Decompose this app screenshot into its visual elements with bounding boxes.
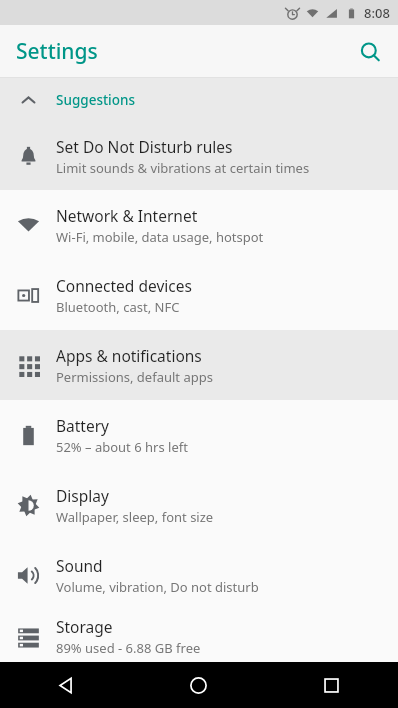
staticText: Apps & notifications <box>56 345 202 366</box>
staticText: 52% – about 6 hrs left <box>56 438 188 456</box>
button[interactable]: Back <box>0 662 132 708</box>
button[interactable]: Recent apps <box>265 662 398 708</box>
staticText: Network & Internet <box>56 205 198 226</box>
staticText: Limit sounds & vibrations at certain tim… <box>56 159 310 177</box>
staticText: Set Do Not Disturb rules <box>56 136 233 157</box>
button[interactable]: Sound <box>0 540 398 610</box>
button[interactable]: Set Do Not Disturb rules <box>0 122 398 190</box>
staticText: Volume, vibration, Do not disturb <box>56 578 259 596</box>
staticText: 8:08 <box>364 4 390 22</box>
staticText: 89% used - 6.88 GB free <box>56 639 201 657</box>
staticText: Bluetooth, cast, NFC <box>56 298 180 316</box>
button[interactable]: Network & Internet <box>0 190 398 260</box>
other: Collapse suggestions <box>0 78 56 122</box>
button[interactable]: Home <box>132 662 265 708</box>
staticText: Suggestions <box>56 91 136 109</box>
button[interactable]: Apps & notifications <box>0 330 398 400</box>
button[interactable]: Battery <box>0 400 398 470</box>
button[interactable]: Connected devices <box>0 260 398 330</box>
staticText: Storage <box>56 616 113 637</box>
button[interactable]: Search <box>346 28 394 76</box>
button[interactable]: Storage <box>0 610 398 662</box>
button[interactable]: Collapse suggestions <box>0 78 398 122</box>
staticText: Wallpaper, sleep, font size <box>56 508 214 526</box>
staticText: Battery <box>56 415 110 436</box>
staticText: Connected devices <box>56 275 192 296</box>
staticText: Sound <box>56 555 103 576</box>
staticText: Wi-Fi, mobile, data usage, hotspot <box>56 228 264 246</box>
staticText: Settings <box>16 37 98 66</box>
button[interactable]: Display <box>0 470 398 540</box>
staticText: Display <box>56 485 109 506</box>
staticText: Permissions, default apps <box>56 368 213 386</box>
